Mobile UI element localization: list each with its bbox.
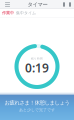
button[interactable]: Menu bbox=[2, 0, 13, 9]
button[interactable]: Search bbox=[62, 0, 66, 9]
staticText: 作業中 bbox=[2, 10, 14, 15]
staticText: 残り時間 bbox=[31, 57, 43, 60]
staticText: タイマー bbox=[27, 1, 47, 8]
staticText: お疲れさま！休憩しましょう bbox=[4, 99, 69, 106]
staticText: 集中タイム bbox=[16, 10, 36, 15]
staticText: あと少しで完了です bbox=[19, 108, 55, 112]
staticText: 0:19 bbox=[25, 60, 49, 76]
button[interactable]: Settings bbox=[68, 0, 72, 9]
